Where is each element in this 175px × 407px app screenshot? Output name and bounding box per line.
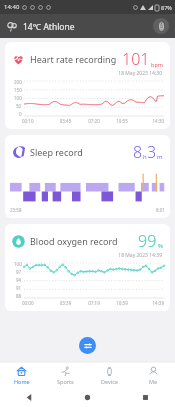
staticText: 14℃ Athlone: [23, 21, 75, 33]
button[interactable]: Me: [131, 362, 175, 388]
staticText: 50: [16, 103, 22, 109]
staticText: 10:55: [108, 118, 136, 124]
staticText: bpm: [151, 61, 163, 68]
staticText: Blood oxygen record: [30, 235, 118, 247]
button[interactable]: Settings: [153, 18, 169, 34]
staticText: 00:10: [22, 118, 51, 124]
staticText: Device: [101, 378, 118, 385]
button[interactable]: Blood oxygen record: [5, 224, 170, 311]
button[interactable]: Sleep record: [5, 135, 170, 218]
staticText: 99: [138, 230, 157, 252]
staticText: 91: [16, 285, 22, 291]
staticText: Sleep record: [30, 146, 83, 158]
staticText: 100: [14, 261, 22, 267]
staticText: 00:00: [22, 300, 51, 306]
staticText: 150: [14, 87, 22, 93]
staticText: Sports: [57, 378, 74, 385]
staticText: 94: [16, 277, 22, 283]
staticText: 8: [133, 141, 143, 163]
staticText: 14:40: [4, 3, 20, 11]
button[interactable]: Home: [0, 362, 43, 388]
staticText: 97: [16, 269, 22, 275]
staticText: %: [158, 242, 163, 250]
staticText: 14:39: [136, 300, 164, 306]
staticText: 03:39: [51, 300, 80, 306]
staticText: 03:45: [51, 118, 80, 124]
staticText: 3: [147, 141, 157, 163]
staticText: 101: [122, 48, 150, 70]
staticText: 88: [16, 293, 22, 299]
staticText: 07:20: [80, 118, 108, 124]
staticText: Heart rate recording: [30, 53, 117, 65]
staticText: h: [143, 153, 147, 161]
staticText: 18 May 2023 14:30: [5, 70, 162, 77]
staticText: 100: [14, 95, 22, 101]
staticText: Home: [14, 378, 30, 385]
staticText: 07:19: [80, 300, 108, 306]
button[interactable]: Sports: [43, 362, 87, 388]
staticText: m: [157, 153, 163, 161]
staticText: 0: [19, 111, 22, 117]
staticText: 200: [14, 79, 22, 85]
button[interactable]: Heart rate recording: [5, 42, 170, 129]
staticText: 23:58: [10, 207, 22, 213]
staticText: 14:30: [136, 118, 164, 124]
staticText: 18 May 2023 14:39: [5, 252, 162, 259]
staticText: Me: [149, 378, 158, 385]
button[interactable]: Device: [87, 362, 131, 388]
button[interactable]: Adjust: [79, 337, 96, 354]
staticText: 87%: [161, 4, 172, 11]
staticText: 8:01: [156, 207, 165, 213]
staticText: 10:59: [108, 300, 136, 306]
